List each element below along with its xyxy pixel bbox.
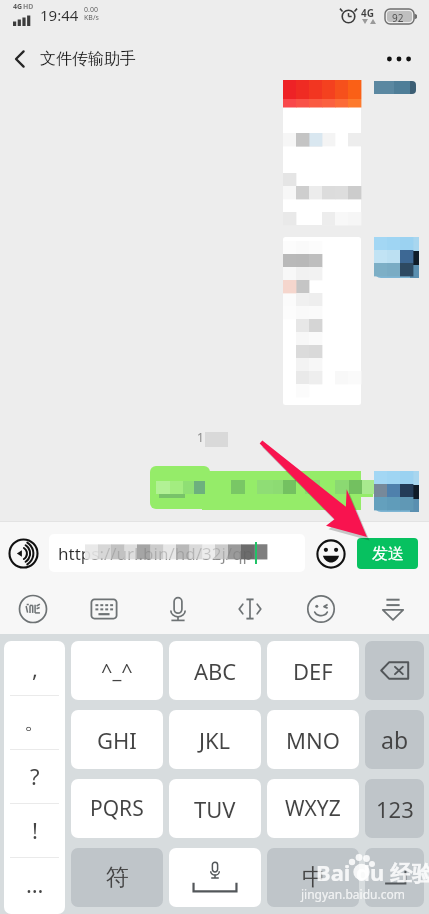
staticText: WXYZ: [285, 794, 341, 823]
staticText: 符: [106, 863, 129, 892]
button[interactable]: Input method: [11, 587, 55, 631]
button[interactable]: TUV: [169, 779, 261, 838]
button[interactable]: Voice input: [7, 537, 40, 570]
staticText: …: [26, 869, 44, 899]
button[interactable]: Image message: [283, 80, 361, 224]
staticText: 1: [197, 429, 204, 445]
staticText: https://url.bin/hd/32j/qp: [58, 542, 254, 565]
staticText: MNO: [286, 725, 340, 755]
staticText: ,: [32, 653, 38, 683]
button[interactable]: JKL: [169, 710, 261, 769]
button[interactable]: DEF: [267, 641, 359, 700]
button[interactable]: enter: [365, 848, 424, 907]
button[interactable]: More options: [377, 38, 421, 80]
staticText: 发送: [372, 544, 404, 564]
button[interactable]: 123: [365, 779, 424, 838]
staticText: du 经验: [356, 857, 429, 887]
button[interactable]: Move cursor: [228, 587, 272, 631]
staticText: 。: [24, 708, 46, 736]
staticText: !: [32, 815, 38, 845]
button[interactable]: backspace: [365, 641, 424, 700]
staticText: PQRS: [90, 794, 144, 823]
staticText: ?: [30, 761, 40, 791]
button[interactable]: 中: [267, 848, 359, 907]
button[interactable]: ,: [4, 641, 65, 695]
button[interactable]: MNO: [267, 710, 359, 769]
button[interactable]: Back: [2, 38, 38, 80]
staticText: DEF: [293, 656, 333, 686]
button[interactable]: Voice input: [156, 587, 200, 631]
staticText: HD: [23, 2, 34, 12]
staticText: 文件传输助手: [40, 49, 136, 69]
staticText: jingyan.baidu.com: [301, 886, 405, 902]
button[interactable]: Link message: [150, 467, 373, 510]
button[interactable]: ABC: [169, 641, 261, 700]
staticText: KB/s: [84, 13, 99, 23]
button[interactable]: Emoji: [315, 538, 347, 570]
button[interactable]: 。: [4, 695, 65, 749]
button[interactable]: GHI: [71, 710, 163, 769]
staticText: JKL: [199, 725, 231, 755]
staticText: 中: [302, 863, 325, 892]
button[interactable]: 符: [71, 848, 163, 907]
button[interactable]: Keyboard: [82, 587, 126, 631]
button[interactable]: PQRS: [71, 779, 163, 838]
staticText: TUV: [194, 794, 236, 824]
staticText: GHI: [97, 725, 137, 755]
staticText: ab: [381, 724, 409, 755]
button[interactable]: …: [4, 857, 65, 911]
staticText: 92: [392, 11, 404, 25]
button[interactable]: 发送: [357, 538, 418, 569]
button[interactable]: Emoji: [299, 587, 343, 631]
button[interactable]: Hide keyboard: [371, 587, 415, 631]
staticText: 4G: [361, 6, 374, 20]
staticText: Bai: [316, 857, 351, 887]
staticText: 123: [376, 794, 414, 824]
staticText: 4G: [13, 2, 23, 12]
staticText: ^_^: [101, 657, 133, 684]
button[interactable]: https://url.bin/hd/32j/qp: [49, 534, 305, 572]
staticText: ABC: [194, 656, 237, 686]
button[interactable]: Image message: [283, 237, 361, 405]
button[interactable]: space: [169, 848, 261, 907]
button[interactable]: !: [4, 803, 65, 857]
button[interactable]: ^_^: [71, 641, 163, 700]
button[interactable]: ab: [365, 710, 424, 769]
button[interactable]: WXYZ: [267, 779, 359, 838]
button[interactable]: ?: [4, 749, 65, 803]
staticText: 19:44: [40, 5, 79, 25]
staticText: 0.00: [84, 5, 98, 15]
